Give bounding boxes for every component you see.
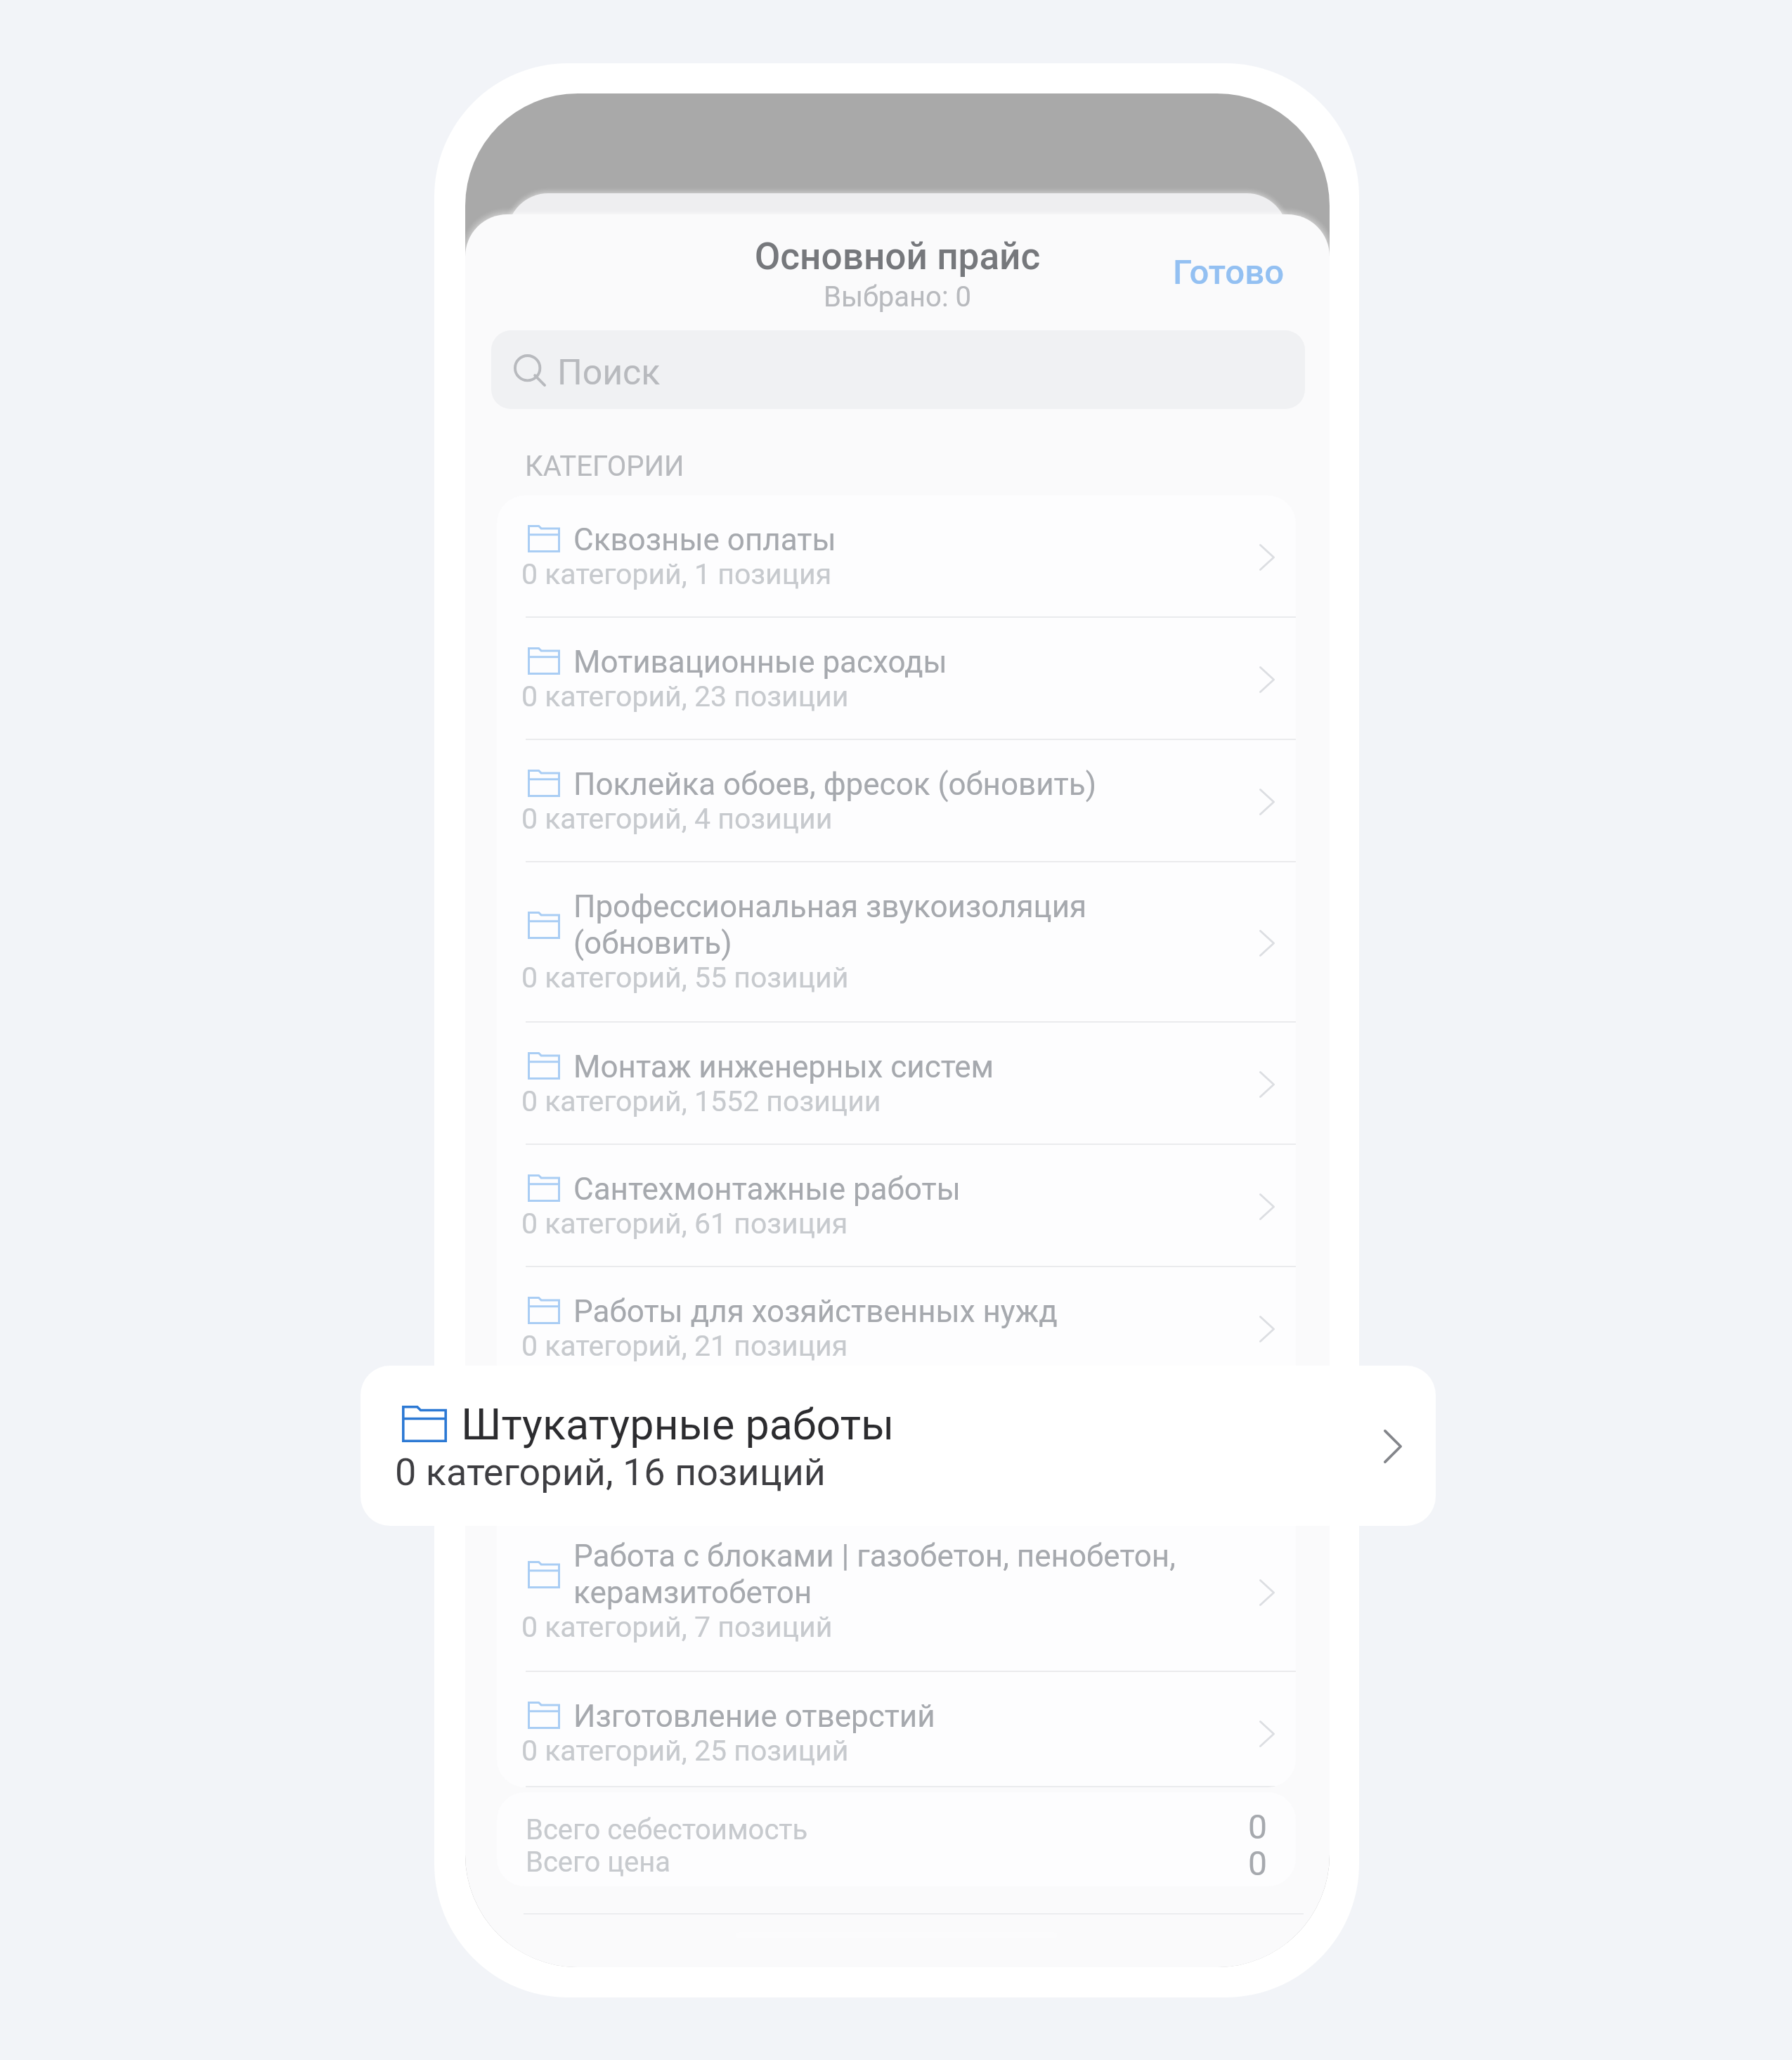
staticText: Поклейка обоев, фресок (обновить) — [573, 766, 1216, 803]
button[interactable]: Профессиональная звукоизоляция (обновить… — [497, 862, 1296, 1023]
button[interactable]: Штукатурные работы — [361, 1366, 1436, 1526]
staticText: 0 категорий, 16 позиций — [395, 1450, 826, 1494]
staticText: Штукатурные работы — [573, 1416, 1216, 1452]
staticText: 0 категорий, 4 позиции — [521, 802, 833, 836]
staticText: Работа с блоками | газобетон, пенобетон,… — [573, 1538, 1216, 1611]
button[interactable]: Поклейка обоев, фресок (обновить) — [497, 740, 1296, 862]
staticText: Профессиональная звукоизоляция (обновить… — [573, 888, 1216, 961]
button[interactable]: Мотивационные расходы — [497, 618, 1296, 740]
staticText: 0 категорий, 23 позиции — [521, 680, 849, 713]
staticText: Штукатурные работы — [461, 1399, 895, 1449]
staticText: Монтаж инженерных систем — [573, 1049, 1216, 1085]
staticText: Изготовление отверстий — [573, 1698, 1216, 1735]
staticText: 0 категорий, 1552 позиции — [521, 1084, 881, 1118]
staticText: Основной прайс — [465, 235, 1330, 278]
staticText: КАТЕГОРИИ — [525, 450, 684, 483]
button[interactable]: Штукатурные работы — [497, 1389, 1296, 1512]
staticText: 0 категорий, 1 позиция — [521, 557, 832, 591]
button[interactable]: Работа с блоками | газобетон, пенобетон,… — [497, 1512, 1296, 1672]
button[interactable]: Поиск — [491, 330, 1305, 409]
staticText: Сквозные оплаты — [573, 522, 1216, 558]
staticText: Работы для хозяйственных нужд — [573, 1293, 1216, 1330]
button[interactable]: Монтаж инженерных систем — [497, 1023, 1296, 1145]
staticText: Сантехмонтажные работы — [573, 1171, 1216, 1207]
staticText: Всего цена — [526, 1846, 670, 1879]
button[interactable]: Работы для хозяйственных нужд — [497, 1267, 1296, 1389]
button[interactable]: Сантехмонтажные работы — [497, 1145, 1296, 1267]
staticText: 0 категорий, 61 позиция — [521, 1207, 848, 1240]
button[interactable]: Сквозные оплаты — [497, 495, 1296, 618]
staticText: 0 категорий, 16 позиций — [521, 1451, 849, 1485]
staticText: 0 категорий, 7 позиций — [521, 1610, 833, 1644]
staticText: 0 категорий, 21 позиция — [521, 1329, 848, 1363]
staticText: Всего себестоимость — [526, 1813, 808, 1846]
staticText: Поиск — [557, 352, 661, 394]
staticText: 0 категорий, 25 позиций — [521, 1734, 849, 1768]
staticText: Мотивационные расходы — [573, 644, 1216, 680]
staticText: 0 — [1248, 1844, 1267, 1883]
staticText: Готово — [1173, 252, 1285, 292]
staticText: 0 категорий, 55 позиций — [521, 961, 849, 995]
staticText: Выбрано: 0 — [465, 280, 1330, 313]
button[interactable]: Изготовление отверстий — [497, 1672, 1296, 1787]
button[interactable]: Готово — [1162, 244, 1296, 301]
staticText: 0 — [1248, 1807, 1267, 1846]
